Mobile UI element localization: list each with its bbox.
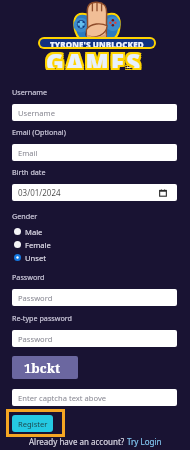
staticText: GAMES <box>44 48 141 70</box>
staticText: Email (Optional) <box>12 127 66 137</box>
staticText: GAMES <box>46 46 143 68</box>
button[interactable]: Female <box>12 238 90 251</box>
staticText: GAMES <box>48 48 145 70</box>
staticText: GAMES <box>44 44 141 66</box>
staticText: GAMES <box>48 46 145 68</box>
staticText: Gender <box>12 211 38 221</box>
button[interactable]: 03/01/2024 <box>12 184 177 201</box>
staticText: Username <box>12 87 47 97</box>
staticText: GAMES <box>44 46 141 68</box>
button[interactable]: Username <box>12 104 177 121</box>
button[interactable]: Enter captcha text above <box>12 389 177 406</box>
staticText: Register <box>18 419 48 429</box>
staticText: Female <box>25 240 51 250</box>
staticText: GAMES <box>46 46 143 68</box>
staticText: Unset <box>25 253 46 263</box>
button[interactable]: Password <box>12 289 177 306</box>
other: Pick date <box>159 189 167 197</box>
button[interactable]: Male <box>12 225 90 238</box>
staticText: Re-type password <box>12 313 73 323</box>
staticText: Password <box>18 293 53 303</box>
staticText: TYRONE'S UNBLOCKED <box>50 39 144 47</box>
staticText: Birth date <box>12 167 46 177</box>
staticText: Already have an account? <box>29 436 127 447</box>
staticText: Password <box>18 334 53 344</box>
button[interactable]: Email <box>12 144 177 161</box>
staticText: GAMES <box>46 44 143 66</box>
button[interactable]: Try Login <box>127 436 162 447</box>
staticText: Enter captcha text above <box>18 393 107 403</box>
staticText: GAMES <box>48 44 145 66</box>
staticText: Username <box>18 108 55 118</box>
staticText: GAMES <box>46 48 143 70</box>
staticText: Email <box>18 148 38 158</box>
staticText: 1bckt <box>24 359 61 377</box>
staticText: 03/01/2024 <box>18 187 61 198</box>
button[interactable]: Register <box>12 415 53 432</box>
button[interactable]: Password <box>12 330 177 347</box>
staticText: Male <box>25 227 43 237</box>
staticText: Password <box>12 272 45 282</box>
button[interactable]: Unset <box>12 251 90 264</box>
